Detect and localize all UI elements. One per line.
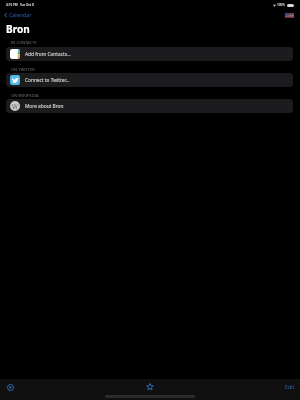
button[interactable]: Connect to Twitter… [6,73,293,87]
staticText: 4:15 PM [6,3,18,7]
staticText: Bron [6,22,30,36]
staticText: ON TWITTER [11,67,35,72]
staticText: Connect to Twitter… [25,77,70,84]
staticText: Edit [285,383,295,390]
staticText: ON WIKIPEDIA [11,93,39,98]
staticText: Calendar [9,11,32,18]
button[interactable]: Edit [285,380,295,392]
button[interactable]: Favorite [144,381,156,393]
staticText: W [12,102,18,110]
button[interactable]: Share [4,381,16,393]
staticText: Add from Contacts… [25,51,71,58]
staticText: 100% [277,3,285,7]
button[interactable]: Add from Contacts… [6,47,293,61]
staticText: More about Bron [25,103,64,110]
button[interactable]: W [6,99,293,113]
staticText: IN CONTACTS [11,40,37,45]
staticText: Tue Oct 8 [20,3,34,7]
button[interactable]: Calendar [4,10,32,19]
